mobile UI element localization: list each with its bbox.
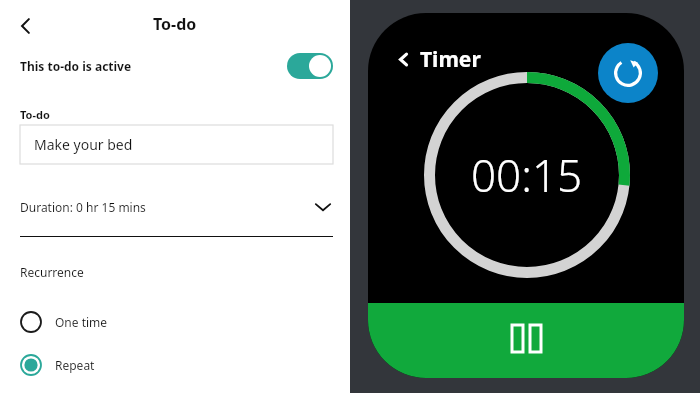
staticText: Duration: 0 hr 15 mins	[20, 199, 146, 215]
button[interactable]: Make your bed	[20, 125, 333, 164]
staticText: Timer	[420, 45, 481, 73]
button[interactable]: Duration: 0 hr 15 mins	[20, 193, 332, 221]
button[interactable]: Back	[8, 8, 44, 44]
button[interactable]: Repeat	[20, 353, 350, 377]
staticText: Make your bed	[34, 135, 133, 154]
button[interactable]: One time	[20, 310, 350, 334]
staticText: To-do	[20, 107, 50, 122]
button[interactable]: Timer	[396, 45, 481, 73]
button[interactable]: This to-do is active	[20, 53, 333, 79]
staticText: Recurrence	[20, 264, 84, 280]
button[interactable]: Restart timer	[598, 43, 658, 103]
staticText: To-do	[153, 13, 197, 35]
staticText: One time	[55, 314, 108, 330]
staticText: Repeat	[55, 357, 95, 373]
staticText: This to-do is active	[20, 58, 132, 74]
button[interactable]: Pause	[368, 303, 684, 378]
staticText: 00:15	[471, 145, 583, 205]
